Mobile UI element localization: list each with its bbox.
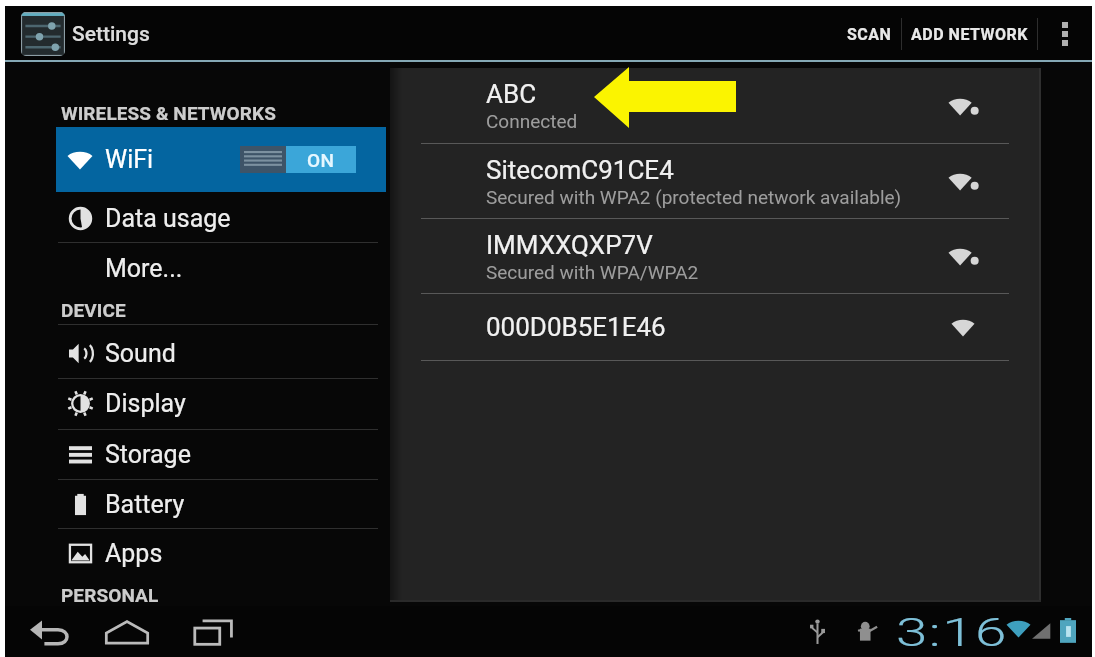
staticText: WiFi <box>105 145 154 174</box>
button[interactable]: Recent apps <box>190 614 236 650</box>
staticText: ABC <box>486 79 537 109</box>
staticText: ON <box>307 149 335 171</box>
button[interactable]: Battery <box>56 479 386 529</box>
staticText: SCAN <box>847 25 892 44</box>
button[interactable]: IMMXXQXP7V <box>390 219 1041 293</box>
staticText: More... <box>105 254 183 283</box>
staticText: PERSONAL <box>61 584 159 606</box>
button[interactable]: ABC <box>390 68 1041 143</box>
button[interactable]: Back <box>27 614 73 650</box>
staticText: WIRELESS & NETWORKS <box>61 102 276 124</box>
staticText: ADD NETWORK <box>911 25 1028 44</box>
button[interactable]: Storage <box>56 429 386 479</box>
staticText: Secured with WPA2 (protected network ava… <box>486 186 902 208</box>
button[interactable]: Sound <box>56 328 386 378</box>
staticText: IMMXXQXP7V <box>486 230 653 260</box>
staticText: DEVICE <box>61 299 126 321</box>
button[interactable]: SCAN <box>838 6 901 62</box>
staticText: 3:16 <box>896 610 1009 656</box>
staticText: Display <box>105 389 186 418</box>
staticText: Settings <box>72 22 150 47</box>
button[interactable]: Data usage <box>56 193 386 243</box>
button[interactable]: More options <box>1038 6 1092 62</box>
staticText: Storage <box>105 440 191 469</box>
staticText: Battery <box>105 490 185 519</box>
button[interactable]: ADD NETWORK <box>902 6 1037 62</box>
button[interactable]: 000D0B5E1E46 <box>390 294 1041 360</box>
button[interactable]: SitecomC91CE4 <box>390 144 1041 218</box>
staticText: Data usage <box>105 204 231 233</box>
staticText: Connected <box>486 110 578 132</box>
staticText: Sound <box>105 339 176 368</box>
staticText: 000D0B5E1E46 <box>486 312 666 342</box>
staticText: Secured with WPA/WPA2 <box>486 261 699 283</box>
staticText: Apps <box>105 539 163 568</box>
button[interactable]: Settings app icon <box>18 9 68 59</box>
button[interactable]: More... <box>56 243 386 293</box>
button[interactable]: Home <box>104 614 150 650</box>
staticText: SitecomC91CE4 <box>486 155 674 185</box>
button[interactable]: WiFi <box>56 127 386 192</box>
button[interactable]: WiFi switch on <box>240 146 356 173</box>
button[interactable]: Display <box>56 378 386 428</box>
button[interactable]: Apps <box>56 528 386 578</box>
